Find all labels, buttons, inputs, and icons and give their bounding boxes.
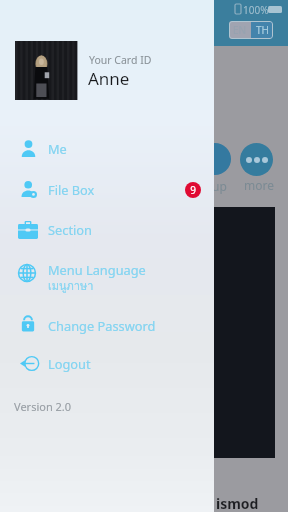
staticText: Anne [88, 67, 130, 90]
button[interactable]: EN [229, 21, 273, 39]
staticText: TH [256, 23, 269, 37]
button[interactable]: Change Password [0, 306, 214, 346]
staticText: up [212, 178, 227, 194]
staticText: File Box [48, 181, 95, 198]
staticText: 100% [243, 3, 269, 17]
button[interactable]: Menu Language [0, 250, 214, 290]
staticText: Logout [48, 355, 91, 372]
staticText: Me [48, 140, 67, 157]
button[interactable]: Me [0, 129, 214, 169]
button[interactable]: File Box [0, 170, 214, 210]
staticText: เมนูภาษา [48, 277, 94, 294]
staticText: Menu Language [48, 261, 146, 278]
button[interactable]: Section [0, 210, 214, 250]
staticText: Change Password [48, 317, 156, 334]
button[interactable]: More [240, 143, 273, 176]
staticText: more [244, 177, 274, 193]
button[interactable]: Logout [0, 344, 214, 384]
staticText: 9 [190, 183, 196, 197]
staticText: ismod [216, 494, 259, 512]
staticText: EN [233, 23, 247, 37]
staticText: Your Card ID [89, 53, 152, 67]
staticText: Version 2.0 [14, 399, 72, 414]
button[interactable]: Help [199, 143, 231, 175]
staticText: Section [48, 221, 92, 238]
